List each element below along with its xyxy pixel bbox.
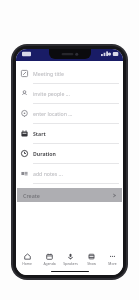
staticText: Duration (33, 150, 56, 157)
staticText: Agenda (43, 261, 56, 266)
staticText: Show (87, 261, 96, 266)
staticText: Start (33, 130, 46, 137)
staticText: Meeting title (33, 70, 64, 77)
staticText: More (108, 261, 117, 266)
button[interactable]: Duration (16, 144, 123, 164)
staticText: add notes ... (33, 170, 63, 177)
button[interactable]: add notes ... (16, 164, 123, 184)
button[interactable]: Create (17, 188, 122, 202)
button[interactable]: Start (16, 124, 123, 144)
button[interactable]: enter location ... (16, 104, 123, 124)
button[interactable]: Speakers (60, 251, 81, 268)
button[interactable]: Meeting title (16, 64, 123, 84)
button[interactable]: Agenda (38, 251, 60, 268)
staticText: enter location ... (33, 110, 73, 117)
button[interactable]: invite people ... (16, 84, 123, 104)
staticText: Home (22, 261, 32, 266)
button[interactable]: Home (16, 251, 38, 268)
staticText: invite people ... (33, 90, 70, 97)
button[interactable]: More (102, 251, 123, 268)
button[interactable]: Show (81, 251, 102, 268)
staticText: Speakers (63, 261, 78, 266)
staticText: Create (23, 192, 40, 199)
